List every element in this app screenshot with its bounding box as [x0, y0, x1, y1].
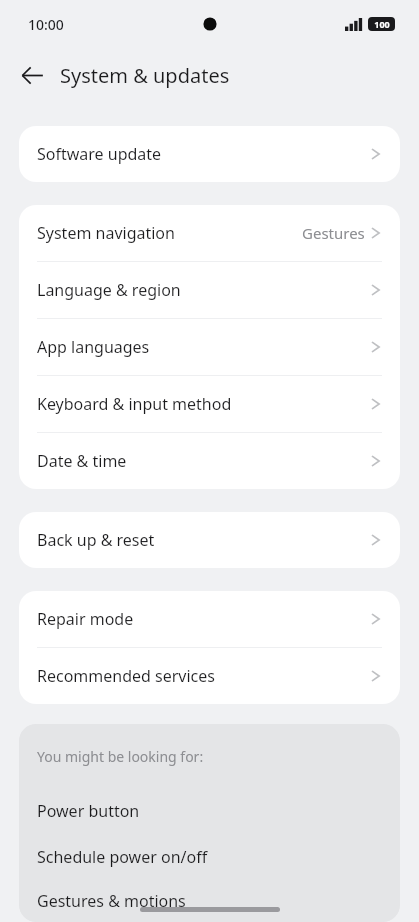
button[interactable]: System navigation [19, 205, 400, 261]
staticText: System & updates [60, 62, 230, 89]
button[interactable]: Keyboard & input method [19, 376, 400, 432]
button[interactable]: Gestures & motions [19, 880, 400, 922]
button[interactable]: Recommended services [19, 648, 400, 704]
staticText: Recommended services [37, 665, 367, 687]
button[interactable]: Date & time [19, 433, 400, 489]
staticText: Language & region [37, 279, 367, 301]
button[interactable]: Repair mode [19, 591, 400, 647]
staticText: Software update [37, 143, 367, 165]
staticText: Back up & reset [37, 529, 367, 551]
staticText: You might be looking for: [37, 747, 204, 766]
button[interactable]: Back up & reset [19, 512, 400, 568]
button[interactable]: App languages [19, 319, 400, 375]
staticText: App languages [37, 336, 367, 358]
staticText: Repair mode [37, 608, 367, 630]
staticText: Keyboard & input method [37, 393, 367, 415]
staticText: Gestures & motions [37, 890, 186, 912]
staticText: Gestures [302, 223, 365, 243]
staticText: 10:00 [28, 15, 64, 34]
button[interactable]: Power button [19, 788, 400, 834]
button[interactable]: Schedule power on/off [19, 834, 400, 880]
button[interactable]: Software update [19, 126, 400, 182]
button[interactable]: Back [10, 53, 54, 97]
staticText: Power button [37, 800, 140, 822]
staticText: 100 [374, 18, 390, 30]
staticText: Schedule power on/off [37, 846, 208, 868]
staticText: Date & time [37, 450, 367, 472]
staticText: System navigation [37, 222, 302, 244]
button[interactable]: Language & region [19, 262, 400, 318]
